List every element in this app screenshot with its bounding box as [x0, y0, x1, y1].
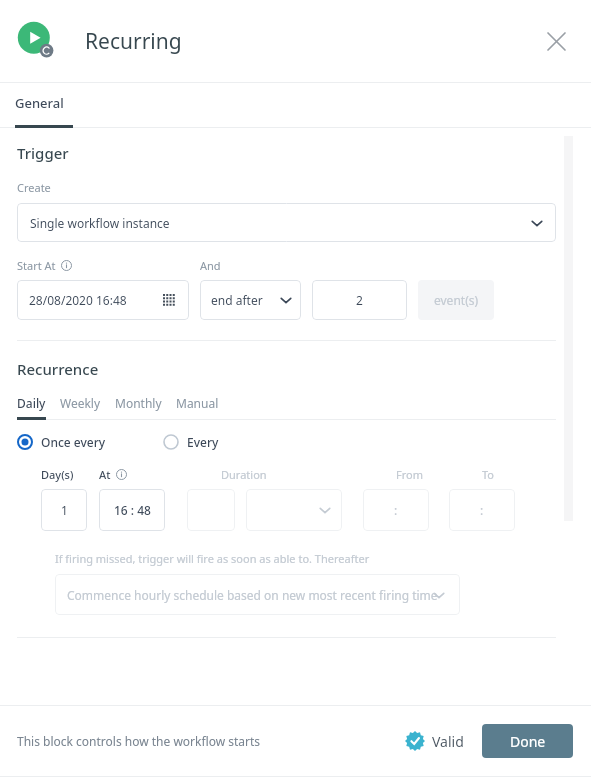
staticText: From — [396, 467, 423, 482]
staticText: Trigger — [17, 143, 69, 163]
staticText: At — [99, 467, 111, 482]
button[interactable]: General — [15, 83, 591, 128]
button[interactable]: Once every — [17, 434, 106, 450]
staticText: If firing missed, trigger will fire as s… — [55, 551, 370, 566]
button[interactable]: Done — [482, 724, 573, 758]
button[interactable]: 16 : 48 — [99, 489, 165, 531]
button[interactable]: end after — [200, 280, 301, 320]
staticText: Commence hourly schedule based on new mo… — [67, 587, 438, 603]
staticText: To — [482, 467, 495, 482]
staticText: Recurring — [85, 27, 182, 56]
staticText: Valid — [432, 732, 464, 751]
staticText: Recurrence — [17, 359, 99, 379]
button[interactable]: 28/08/2020 16:48 — [17, 280, 189, 320]
button[interactable]: Single workflow instance — [17, 203, 556, 242]
button[interactable]: Commence hourly schedule based on new mo… — [55, 574, 460, 615]
staticText: General — [15, 94, 64, 112]
staticText: : — [394, 502, 398, 518]
button[interactable]: Manual — [176, 395, 219, 411]
staticText: And — [200, 258, 221, 273]
button[interactable]: Every — [163, 434, 219, 450]
button[interactable]: : — [363, 489, 429, 531]
staticText: end after — [211, 292, 263, 308]
staticText: Create — [17, 180, 51, 195]
staticText: Duration — [221, 467, 267, 482]
staticText: 2 — [356, 292, 363, 308]
staticText: Manual — [176, 395, 219, 411]
button[interactable]: : — [449, 489, 515, 531]
staticText: Once every — [41, 434, 106, 450]
staticText: 16 : 48 — [114, 502, 151, 518]
button[interactable]: Valid — [405, 731, 464, 751]
button[interactable]: Monthly — [115, 395, 162, 411]
staticText: Weekly — [60, 395, 101, 411]
staticText: event(s) — [434, 292, 479, 308]
button[interactable]: Daily — [17, 395, 46, 411]
staticText: Done — [510, 732, 546, 751]
staticText: 28/08/2020 16:48 — [29, 292, 127, 308]
button[interactable] — [187, 489, 235, 531]
staticText: 1 — [61, 502, 68, 518]
staticText: Single workflow instance — [30, 215, 170, 231]
button[interactable] — [246, 489, 342, 531]
button[interactable]: Close — [539, 24, 573, 58]
staticText: : — [480, 502, 484, 518]
staticText: Day(s) — [41, 467, 74, 482]
staticText: Every — [187, 434, 219, 450]
button[interactable]: 2 — [312, 280, 407, 320]
staticText: Daily — [17, 395, 46, 411]
staticText: Monthly — [115, 395, 162, 411]
staticText: This block controls how the workflow sta… — [17, 733, 261, 749]
button[interactable]: Weekly — [60, 395, 101, 411]
button[interactable]: 1 — [41, 489, 87, 531]
staticText: Start At — [17, 258, 56, 273]
